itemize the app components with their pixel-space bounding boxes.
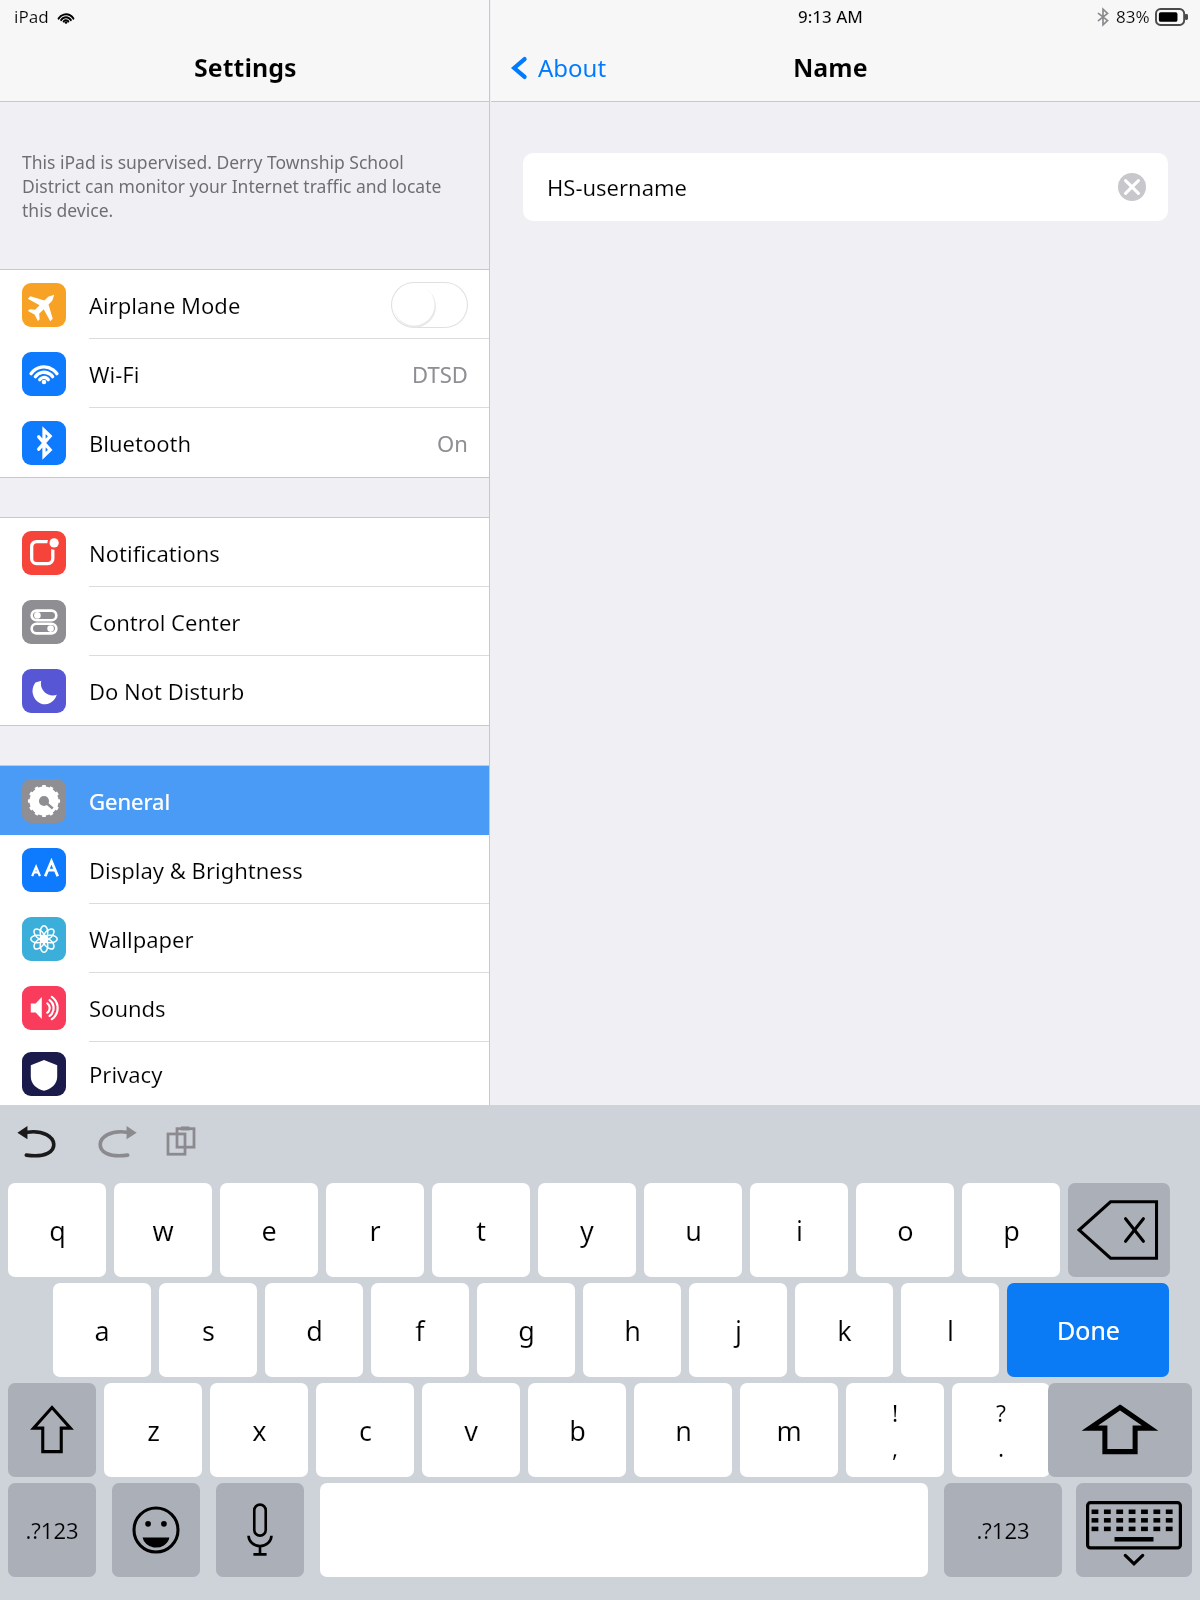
staticText: m — [776, 1412, 802, 1449]
staticText: b — [569, 1412, 586, 1449]
staticText: j — [735, 1312, 742, 1349]
button[interactable]: r — [326, 1183, 424, 1277]
button[interactable]: j — [689, 1283, 787, 1377]
staticText: Airplane Mode — [89, 290, 241, 320]
staticText: a — [94, 1312, 110, 1349]
button[interactable]: Airplane Mode — [0, 270, 490, 339]
button[interactable]: Shift — [8, 1383, 96, 1477]
button[interactable]: Notifications — [0, 518, 490, 587]
button[interactable]: Airplane Mode toggle — [391, 282, 468, 328]
staticText: Privacy — [89, 1059, 163, 1089]
button[interactable]: q — [8, 1183, 106, 1277]
button[interactable]: Bluetooth — [0, 408, 490, 477]
button[interactable]: s — [159, 1283, 257, 1377]
button[interactable]: Display & Brightness — [0, 835, 490, 904]
staticText: g — [518, 1312, 535, 1349]
button[interactable]: ! — [846, 1383, 944, 1477]
button[interactable]: n — [634, 1383, 732, 1477]
staticText: d — [306, 1312, 323, 1349]
staticText: q — [49, 1212, 66, 1249]
button[interactable]: Redo — [84, 1119, 140, 1163]
button[interactable]: d — [265, 1283, 363, 1377]
staticText: x — [252, 1412, 267, 1449]
button[interactable]: About — [509, 51, 607, 84]
staticText: s — [202, 1312, 215, 1349]
staticText: w — [152, 1212, 174, 1249]
staticText: 83% — [1116, 5, 1150, 28]
staticText: Bluetooth — [89, 428, 192, 458]
button[interactable]: x — [210, 1383, 308, 1477]
staticText: o — [897, 1212, 914, 1249]
staticText: i — [796, 1212, 803, 1249]
staticText: .?123 — [25, 1515, 79, 1545]
staticText: z — [147, 1412, 160, 1449]
button[interactable]: l — [901, 1283, 999, 1377]
button[interactable]: k — [795, 1283, 893, 1377]
button[interactable]: m — [740, 1383, 838, 1477]
button[interactable]: Do Not Disturb — [0, 656, 490, 725]
staticText: Notifications — [89, 538, 220, 568]
button[interactable]: Clear text — [1118, 173, 1146, 201]
button[interactable]: t — [432, 1183, 530, 1277]
button[interactable]: .?123 — [944, 1483, 1062, 1577]
staticText: ? — [996, 1397, 1006, 1428]
staticText: DTSD — [412, 359, 468, 389]
button[interactable]: e — [220, 1183, 318, 1277]
button[interactable]: .?123 — [8, 1483, 96, 1577]
staticText: Settings — [194, 50, 297, 84]
button[interactable]: Wallpaper — [0, 904, 490, 973]
button[interactable]: h — [583, 1283, 681, 1377]
button[interactable]: Privacy — [0, 1042, 490, 1105]
staticText: u — [685, 1212, 702, 1249]
button[interactable]: Control Center — [0, 587, 490, 656]
button[interactable]: ? — [952, 1383, 1050, 1477]
staticText: General — [89, 786, 171, 816]
button[interactable]: g — [477, 1283, 575, 1377]
staticText: , — [892, 1432, 899, 1463]
staticText: Wallpaper — [89, 924, 194, 954]
staticText: v — [464, 1412, 478, 1449]
staticText: t — [476, 1212, 486, 1249]
staticText: Sounds — [89, 993, 166, 1023]
button[interactable]: General — [0, 766, 490, 835]
button[interactable]: y — [538, 1183, 636, 1277]
button[interactable]: o — [856, 1183, 954, 1277]
button[interactable]: Hide keyboard — [1076, 1483, 1192, 1577]
staticText: n — [675, 1412, 692, 1449]
button[interactable]: f — [371, 1283, 469, 1377]
button[interactable]: w — [114, 1183, 212, 1277]
button[interactable]: a — [53, 1283, 151, 1377]
button[interactable]: Dictation — [216, 1483, 304, 1577]
button[interactable]: Done — [1007, 1283, 1169, 1377]
staticText: k — [837, 1312, 852, 1349]
staticText: iPad — [14, 5, 49, 28]
staticText: Control Center — [89, 607, 241, 637]
button[interactable]: Paste — [156, 1119, 206, 1163]
staticText: . — [998, 1432, 1005, 1463]
button[interactable]: u — [644, 1183, 742, 1277]
button[interactable]: Emoji — [112, 1483, 200, 1577]
button[interactable]: b — [528, 1383, 626, 1477]
button[interactable]: z — [104, 1383, 202, 1477]
staticText: Name — [793, 50, 868, 84]
staticText: e — [261, 1212, 277, 1249]
button[interactable]: HS-username — [523, 153, 1168, 221]
button[interactable]: Sounds — [0, 973, 490, 1042]
staticText: p — [1003, 1212, 1020, 1249]
button[interactable]: Backspace — [1068, 1183, 1170, 1277]
button[interactable]: i — [750, 1183, 848, 1277]
staticText: r — [369, 1212, 381, 1249]
button[interactable]: Wi-Fi — [0, 339, 490, 408]
button[interactable]: v — [422, 1383, 520, 1477]
button[interactable]: p — [962, 1183, 1060, 1277]
button[interactable]: c — [316, 1383, 414, 1477]
staticText: 9:13 AM — [798, 5, 863, 28]
button[interactable]: Shift — [1048, 1383, 1192, 1477]
button[interactable]: Undo — [14, 1119, 70, 1163]
staticText: ! — [892, 1397, 899, 1428]
staticText: This iPad is supervised. Derry Township … — [22, 150, 462, 222]
staticText: Do Not Disturb — [89, 676, 245, 706]
staticText: l — [947, 1312, 954, 1349]
staticText: f — [415, 1312, 425, 1349]
